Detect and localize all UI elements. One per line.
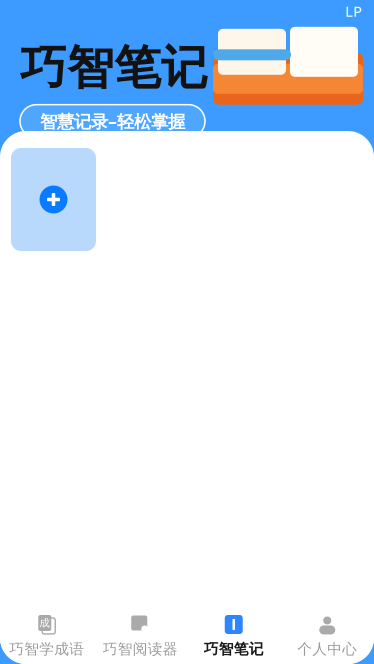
staticText: 巧智阅读器 xyxy=(103,640,178,658)
staticText: 成 xyxy=(39,616,50,629)
staticText: 巧智笔记 xyxy=(204,640,264,658)
staticText: 个人中心 xyxy=(297,640,357,658)
staticText: 智慧记录–轻松掌握 xyxy=(40,110,185,133)
staticText: 巧智学成语 xyxy=(9,640,84,658)
staticText: 巧智笔记 xyxy=(20,39,208,97)
button[interactable]: 个人中心 xyxy=(280,608,374,664)
staticText: LP xyxy=(345,1,362,21)
button[interactable]: 巧智笔记 xyxy=(187,608,280,664)
button[interactable]: 巧智阅读器 xyxy=(93,608,187,664)
button[interactable]: 新建笔记 xyxy=(11,148,96,251)
button[interactable]: 成 xyxy=(0,608,93,664)
